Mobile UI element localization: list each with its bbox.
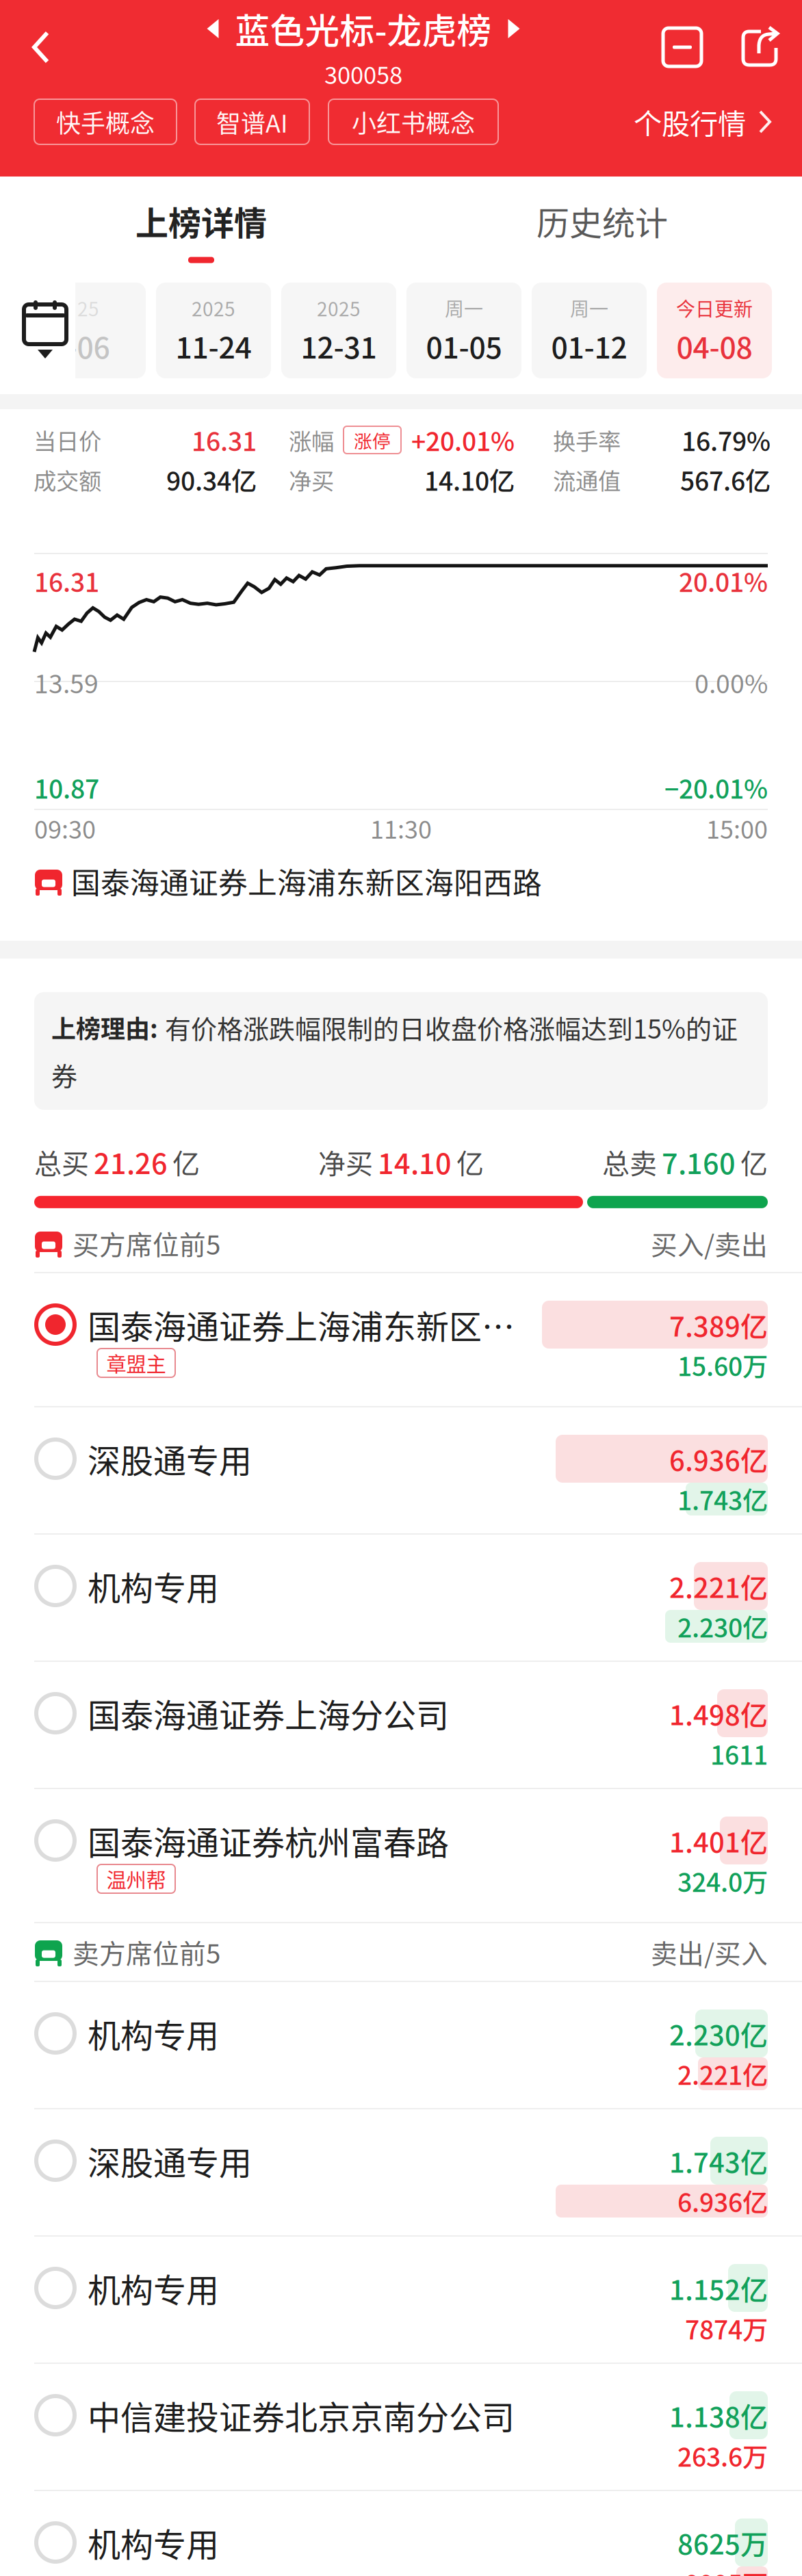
staticText: 机构专用: [88, 2264, 219, 2312]
staticText: 流通值: [553, 463, 621, 496]
staticText: 国泰海通证券上海分公司: [88, 1689, 449, 1737]
staticText: 25: [77, 294, 99, 322]
staticText: 15:00: [706, 810, 768, 846]
staticText: 11-24: [176, 325, 251, 367]
staticText: +20.01%: [411, 421, 515, 458]
staticText: 1.743亿: [669, 2141, 768, 2180]
staticText: 成交额: [34, 463, 101, 496]
staticText: 机构专用: [88, 2010, 219, 2057]
button[interactable]: 机构专用: [0, 2237, 802, 2363]
button[interactable]: 选择日期: [15, 267, 75, 394]
staticText: 90.34亿: [166, 461, 257, 498]
staticText: 15.60万: [677, 1346, 768, 1384]
staticText: 12-31: [301, 325, 377, 367]
staticText: 深股通专用: [88, 1435, 252, 1482]
staticText: 1.152亿: [669, 2268, 768, 2308]
staticText: 有价格涨跌幅限制的日收盘价格涨幅达到15%的证: [165, 1009, 738, 1046]
staticText: 章盟主: [106, 1348, 166, 1377]
staticText: 快手概念: [56, 104, 155, 140]
button[interactable]: 返回: [0, 8, 82, 87]
staticText: 2025: [192, 294, 235, 322]
staticText: 300058: [324, 57, 402, 91]
staticText: −20.01%: [664, 769, 768, 806]
staticText: 2.221亿: [669, 1566, 768, 1606]
staticText: 10.87: [34, 769, 99, 806]
button[interactable]: 历史统计: [402, 177, 802, 267]
button[interactable]: 中信建投证券北京京南分公司: [0, 2364, 802, 2490]
staticText: 亿: [456, 1142, 484, 1182]
button[interactable]: 周一: [406, 283, 521, 378]
staticText: 14.10: [378, 1141, 452, 1182]
staticText: 20.01%: [679, 562, 768, 599]
staticText: 11:30: [370, 810, 432, 846]
staticText: 周一: [445, 294, 483, 322]
staticText: 1.743亿: [677, 1481, 768, 1518]
staticText: 9995万: [685, 2564, 768, 2576]
staticText: 亿: [740, 1142, 768, 1182]
staticText: 卖方席位前5: [73, 1933, 220, 1971]
button[interactable]: 国泰海通证券上海浦东新区…: [0, 1273, 802, 1406]
staticText: 中信建投证券北京京南分公司: [88, 2391, 515, 2439]
button[interactable]: 深股通专用: [0, 1407, 802, 1533]
button[interactable]: 机构专用: [0, 1982, 802, 2108]
staticText: 04-08: [676, 325, 752, 367]
staticText: 温州帮: [106, 1864, 166, 1893]
button[interactable]: 周一: [532, 283, 647, 378]
button[interactable]: 2025: [156, 283, 271, 378]
staticText: 智谱AI: [216, 104, 288, 140]
staticText: 324.0万: [677, 1862, 768, 1899]
staticText: 2.230亿: [669, 2014, 768, 2053]
staticText: 深股通专用: [88, 2137, 252, 2184]
staticText: 1.138亿: [669, 2395, 768, 2435]
staticText: 1611: [710, 1735, 768, 1772]
button[interactable]: 国泰海通证券上海浦东新区海阳西路: [34, 855, 768, 907]
button[interactable]: 国泰海通证券上海分公司: [0, 1662, 802, 1788]
staticText: 今日更新: [676, 294, 753, 322]
staticText: 7.389亿: [669, 1305, 768, 1344]
staticText: 13.59: [34, 664, 99, 701]
staticText: 567.6亿: [680, 461, 771, 498]
button[interactable]: 今日更新: [657, 283, 772, 378]
button[interactable]: 深股通专用: [0, 2109, 802, 2235]
staticText: 8625万: [677, 2523, 768, 2562]
staticText: 机构专用: [88, 2519, 219, 2566]
staticText: 周一: [570, 294, 608, 322]
button[interactable]: 下一只: [508, 19, 520, 38]
button[interactable]: 分享: [720, 8, 801, 87]
staticText: 7.160: [662, 1141, 736, 1182]
staticText: 16.79%: [682, 421, 771, 458]
staticText: 总卖: [602, 1142, 657, 1182]
staticText: -06: [67, 325, 110, 367]
staticText: 01-05: [426, 325, 502, 367]
staticText: 09:30: [34, 810, 96, 846]
button[interactable]: 个股行情: [634, 101, 772, 142]
staticText: 机构专用: [88, 1562, 219, 1610]
staticText: 21.26: [94, 1141, 168, 1182]
staticText: 历史统计: [536, 197, 668, 245]
staticText: 净买: [289, 463, 334, 496]
button[interactable]: 上一只: [207, 19, 219, 38]
button[interactable]: 机构专用: [0, 1535, 802, 1661]
button[interactable]: 2025: [281, 283, 396, 378]
button[interactable]: 自选: [645, 8, 720, 87]
button[interactable]: 国泰海通证券杭州富春路: [0, 1789, 802, 1922]
button[interactable]: 上榜详情: [0, 177, 402, 267]
staticText: 1.498亿: [669, 1693, 768, 1733]
staticText: 01-12: [551, 325, 627, 367]
staticText: 国泰海通证券上海浦东新区海阳西路: [71, 860, 542, 902]
staticText: 蓝色光标-龙虎榜: [235, 4, 492, 54]
button[interactable]: 小红书概念: [328, 99, 498, 144]
staticText: 6.936亿: [677, 2183, 768, 2220]
staticText: 6.936亿: [669, 1439, 768, 1478]
button[interactable]: 25: [31, 283, 146, 378]
staticText: 总买: [34, 1142, 89, 1182]
button[interactable]: 智谱AI: [195, 99, 309, 144]
staticText: 换手率: [553, 423, 621, 456]
staticText: 7874万: [685, 2310, 768, 2347]
staticText: 小红书概念: [352, 104, 475, 140]
staticText: 1.401亿: [669, 1821, 768, 1860]
staticText: 14.10亿: [424, 461, 515, 498]
button[interactable]: 快手概念: [34, 99, 177, 144]
staticText: 2.230亿: [677, 1608, 768, 1645]
button[interactable]: 机构专用: [0, 2491, 802, 2576]
